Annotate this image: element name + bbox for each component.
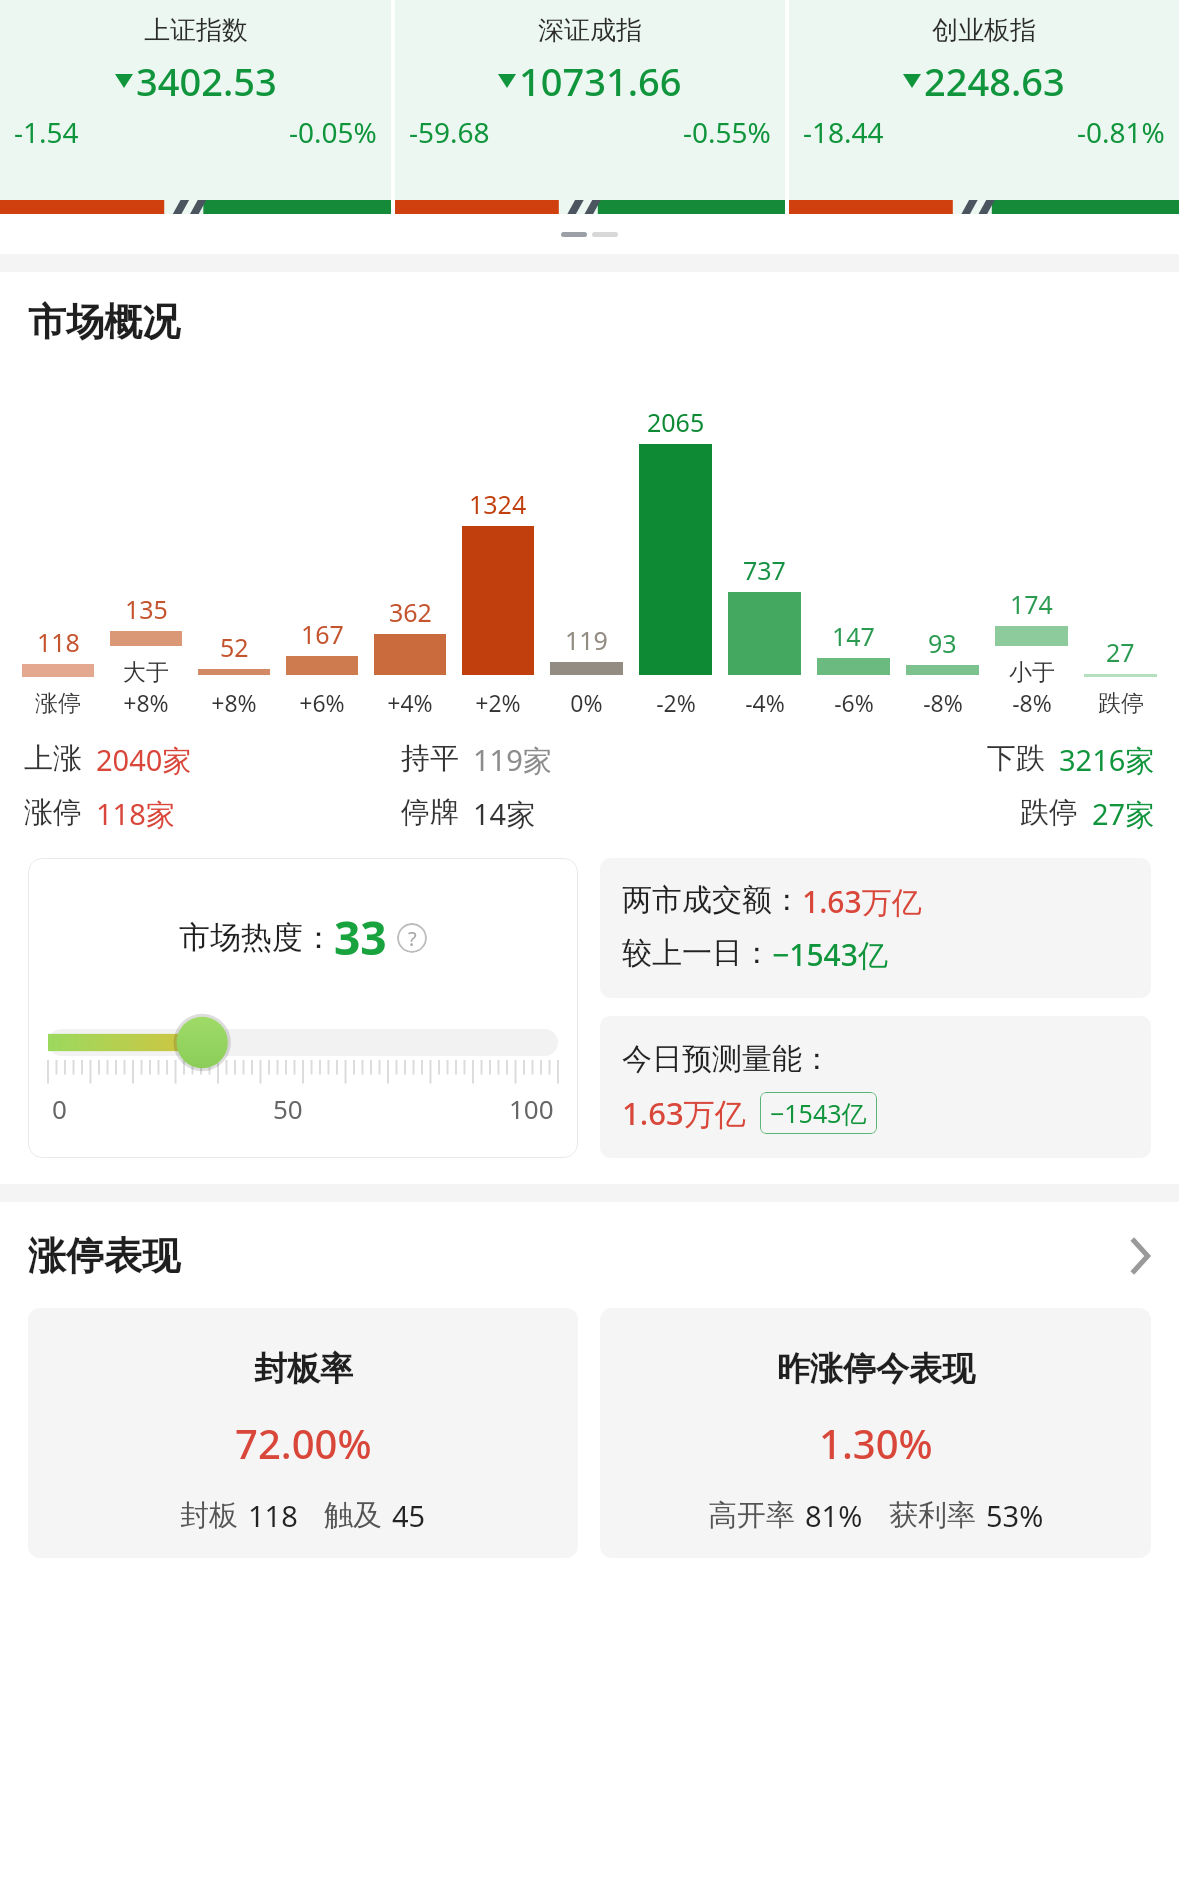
staticText: 737 <box>743 553 786 587</box>
staticText: 高开率 <box>708 1497 795 1534</box>
staticText: 14家 <box>473 794 536 834</box>
staticText: 1324 <box>469 487 527 521</box>
staticText: 0 <box>52 1091 67 1126</box>
staticText: 72.00% <box>235 1416 372 1470</box>
staticText: 27家 <box>1092 794 1155 834</box>
button[interactable]: 深证成指 <box>395 0 785 214</box>
staticText: 119 <box>565 623 608 657</box>
button[interactable]: 涨停表现 <box>0 1232 1179 1280</box>
staticText: 获利率 <box>889 1497 976 1534</box>
staticText: 100 <box>509 1091 554 1126</box>
staticText: -0.81% <box>1077 113 1165 151</box>
staticText: -0.05% <box>289 113 377 151</box>
staticText: 2248.63 <box>924 55 1065 107</box>
staticText: 50 <box>273 1091 303 1126</box>
button[interactable]: 封板率 <box>28 1308 578 1558</box>
staticText: 10731.66 <box>519 55 682 107</box>
staticText: 1.30% <box>819 1416 933 1470</box>
staticText: 封板率 <box>254 1348 353 1390</box>
staticText: -6% <box>834 687 874 718</box>
staticText: 今日预测量能： <box>622 1040 832 1078</box>
button[interactable]: 上证指数 <box>0 0 391 214</box>
staticText: 涨停 <box>24 794 82 831</box>
other: 更多 <box>1129 1239 1151 1273</box>
staticText: 市场热度： <box>179 918 334 957</box>
staticText: -8% <box>923 687 963 718</box>
button[interactable]: 两市成交额： <box>600 858 1151 998</box>
staticText: 167 <box>301 617 344 651</box>
button[interactable]: 帮助 <box>397 923 427 953</box>
staticText: ? <box>408 925 417 952</box>
staticText: 52 <box>220 630 249 664</box>
staticText: 3402.53 <box>136 55 277 107</box>
staticText: 涨停 <box>35 689 81 718</box>
staticText: 跌停 <box>1020 794 1078 831</box>
staticText: 大于 <box>123 658 169 687</box>
staticText: 停牌 <box>401 794 459 831</box>
staticText: -2% <box>656 687 696 718</box>
staticText: 昨涨停今表现 <box>777 1348 975 1390</box>
staticText: 持平 <box>401 740 459 777</box>
staticText: 小于 <box>1009 658 1055 687</box>
staticText: 上涨 <box>24 740 82 777</box>
button[interactable]: 创业板指 <box>789 0 1179 214</box>
staticText: 119家 <box>473 740 552 780</box>
staticText: 27 <box>1106 635 1135 669</box>
staticText: 118 <box>248 1496 298 1535</box>
staticText: 两市成交额： <box>622 881 802 919</box>
staticText: 下跌 <box>987 740 1045 777</box>
staticText: 跌停 <box>1098 689 1144 718</box>
staticText: 147 <box>832 619 875 653</box>
staticText: 深证成指 <box>538 14 642 47</box>
staticText: 1.63万亿 <box>622 1092 746 1134</box>
staticText: -59.68 <box>409 113 490 151</box>
staticText: 上证指数 <box>144 14 248 47</box>
staticText: -18.44 <box>803 113 884 151</box>
staticText: 2040家 <box>96 740 192 780</box>
staticText: +4% <box>387 687 433 718</box>
staticText: +2% <box>475 687 521 718</box>
staticText: 市场概况 <box>28 298 180 346</box>
staticText: 2065 <box>647 405 705 439</box>
staticText: 118家 <box>96 794 175 834</box>
button[interactable]: 市场热度： <box>28 858 578 1158</box>
staticText: 较上一日： <box>622 934 772 972</box>
staticText: −1543亿 <box>770 1096 867 1130</box>
staticText: 135 <box>125 592 168 626</box>
staticText: 1.63万亿 <box>802 881 922 922</box>
button[interactable]: 昨涨停今表现 <box>600 1308 1151 1558</box>
staticText: 涨停表现 <box>28 1232 180 1280</box>
staticText: 118 <box>37 625 80 659</box>
staticText: +6% <box>299 687 345 718</box>
staticText: -4% <box>745 687 785 718</box>
staticText: 174 <box>1010 587 1053 621</box>
staticText: 触及 <box>324 1497 382 1534</box>
staticText: 81% <box>805 1496 863 1535</box>
staticText: 0% <box>570 687 603 718</box>
staticText: -1.54 <box>14 113 79 151</box>
staticText: 3216家 <box>1059 740 1155 780</box>
staticText: +8% <box>123 687 169 718</box>
staticText: -0.55% <box>683 113 771 151</box>
staticText: 93 <box>928 626 957 660</box>
staticText: 创业板指 <box>932 14 1036 47</box>
staticText: -8% <box>1012 687 1052 718</box>
staticText: 362 <box>389 595 432 629</box>
staticText: +8% <box>211 687 257 718</box>
button[interactable]: 今日预测量能： <box>600 1016 1151 1158</box>
staticText: 33 <box>334 906 387 969</box>
staticText: 53% <box>986 1496 1044 1535</box>
staticText: 封板 <box>180 1497 238 1534</box>
staticText: −1543亿 <box>772 934 888 975</box>
staticText: 45 <box>392 1496 426 1535</box>
